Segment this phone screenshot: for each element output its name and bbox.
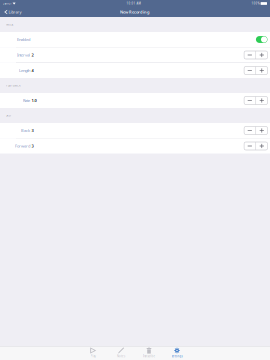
button[interactable]: Interval bbox=[0, 47, 270, 62]
staticText: 10:01 AM bbox=[127, 2, 141, 5]
staticText: Notes bbox=[117, 354, 125, 358]
button[interactable]: Stepper bbox=[244, 66, 267, 74]
staticText: Settings bbox=[171, 354, 182, 358]
staticText: New Recording bbox=[120, 9, 150, 15]
button[interactable]: Enabled bbox=[0, 32, 270, 47]
staticText: Enabled bbox=[17, 37, 30, 42]
button[interactable]: Stepper bbox=[244, 126, 267, 134]
staticText: PAUSE bbox=[6, 23, 13, 26]
button[interactable]: Settings bbox=[163, 346, 191, 360]
button[interactable]: Stepper bbox=[244, 51, 267, 59]
staticText: 3 bbox=[32, 128, 34, 133]
staticText: 1.0 bbox=[32, 98, 37, 103]
button[interactable]: Play bbox=[79, 346, 107, 360]
staticText: SKIP bbox=[6, 114, 12, 117]
staticText: Library bbox=[9, 9, 22, 15]
button[interactable]: Length bbox=[0, 63, 270, 78]
button[interactable]: Back bbox=[0, 123, 270, 138]
staticText: Rate bbox=[23, 98, 30, 103]
button[interactable]: Forward bbox=[0, 138, 270, 153]
staticText: PLAYBACK bbox=[6, 84, 21, 87]
staticText: 4 bbox=[32, 68, 34, 73]
staticText: Transcribe bbox=[142, 354, 155, 358]
button[interactable]: Enabled switch bbox=[256, 36, 267, 43]
button[interactable]: Notes bbox=[107, 346, 135, 360]
button[interactable]: Transcribe bbox=[135, 346, 163, 360]
button[interactable]: Stepper bbox=[244, 142, 267, 150]
button[interactable]: Rate bbox=[0, 93, 270, 108]
staticText: Play bbox=[90, 354, 95, 358]
staticText: 3 bbox=[32, 143, 34, 149]
staticText: Forward bbox=[15, 143, 30, 149]
staticText: 2 bbox=[32, 52, 34, 58]
staticText: Carrier bbox=[3, 2, 12, 5]
staticText: Back bbox=[21, 128, 30, 133]
button[interactable]: Stepper bbox=[244, 96, 267, 104]
staticText: Length bbox=[19, 68, 30, 73]
staticText: Interval bbox=[17, 52, 30, 58]
staticText: 100% bbox=[252, 2, 260, 5]
button[interactable]: Library bbox=[0, 7, 25, 17]
